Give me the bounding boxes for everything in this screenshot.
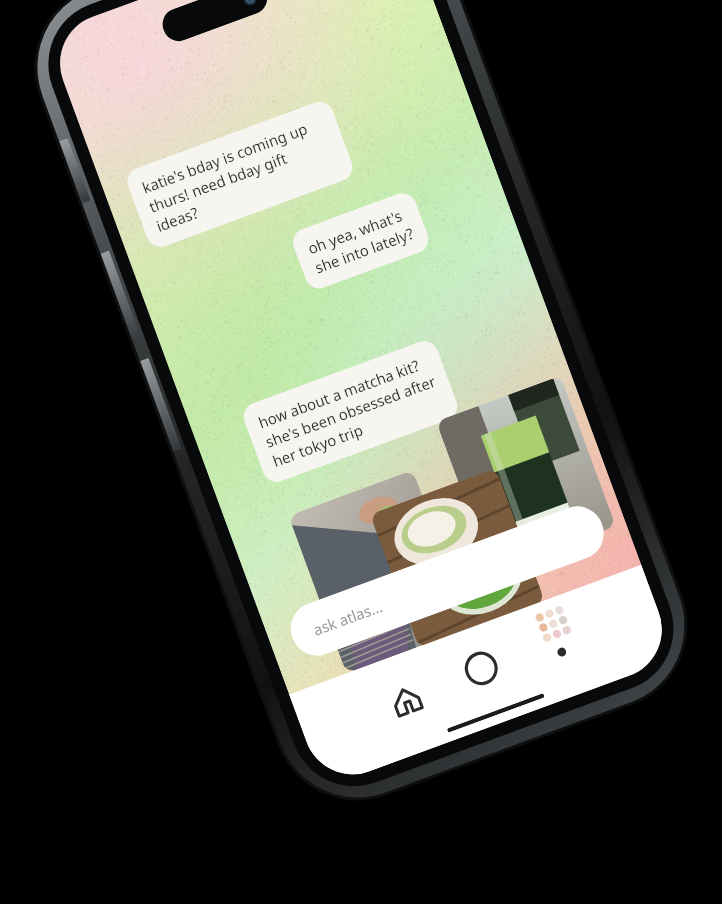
- button[interactable]: [288, 470, 471, 673]
- staticText: she into lately?: [312, 223, 416, 278]
- staticText: katie's bday is coming up: [139, 118, 310, 198]
- button[interactable]: Apps: [526, 592, 596, 663]
- button[interactable]: oh yea, what's: [289, 189, 433, 293]
- staticText: her tokyo trip: [270, 419, 366, 471]
- button[interactable]: Home: [377, 671, 436, 730]
- button[interactable]: how about a matcha kit?: [239, 337, 461, 486]
- button[interactable]: ask atlas...: [283, 499, 611, 663]
- button[interactable]: [436, 376, 616, 572]
- button[interactable]: Capture: [451, 638, 512, 699]
- staticText: she's been obsessed after: [262, 371, 438, 452]
- staticText: oh yea, what's: [305, 205, 405, 259]
- staticText: thurs! need bday gift ideas?: [146, 132, 341, 236]
- button[interactable]: katie's bday is coming up: [123, 98, 357, 251]
- staticText: how about a matcha kit?: [255, 355, 422, 433]
- button[interactable]: [370, 468, 545, 648]
- staticText: ask atlas...: [310, 596, 385, 640]
